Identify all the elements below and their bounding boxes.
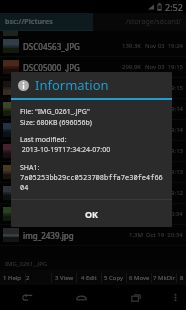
button[interactable]: img_2439.jpg [0,225,186,246]
staticText: DSC04563_.JPG [23,41,122,52]
button[interactable]: DSC05000_.JPG [0,57,186,78]
staticText: img_2437.jpg [23,209,129,220]
staticText: 2:52 [165,1,183,13]
button[interactable]: bsc://Pictures [0,13,93,30]
staticText: DSC05110_.JPG [23,104,122,115]
staticText: File: "IMG_0261_.JPG" [20,107,90,117]
staticText: Information [35,76,109,94]
button[interactable]: Recents [109,285,164,310]
staticText: 7 MkDir [153,274,176,282]
button[interactable]: DSC05420_.JPG [0,162,186,183]
button[interactable]: 7 MkDir [152,270,176,285]
staticText: 176.8K [122,168,142,176]
button[interactable]: 4 Edit [77,270,101,285]
staticText: Nov 03 19:24 [145,42,183,50]
staticText: DSC05011_.JPG [23,83,122,94]
staticText: 299.9K [122,63,142,71]
button[interactable]: Back [0,285,54,310]
button[interactable]: Home [54,285,109,310]
staticText: 139.3K [122,42,142,50]
staticText: 6 Move [129,274,150,282]
staticText: Last modified: [20,135,67,145]
staticText: 8 [180,274,184,282]
button[interactable]: 8 [177,270,186,285]
staticText: 04 [20,183,29,193]
button[interactable]: More options [164,285,186,310]
staticText: Nov 03 19:12 [145,189,183,197]
button[interactable]: OK [11,200,172,227]
staticText: Nov 03 19:14 [145,126,183,134]
staticText: 7a05253bb29cc0523708bffa7e30fe4f6658877 [20,173,166,183]
staticText: Nov 03 19:13 [145,147,183,155]
staticText: Oct 19 20:34 [146,210,183,218]
staticText: SHA1: [20,163,40,173]
staticText: 5 Copy [104,274,124,282]
staticText: 3 View [55,274,74,282]
button[interactable]: DSC05210_.JPG [0,120,186,141]
staticText: Nov 03 19:15 [145,63,183,71]
staticText: img_2439.jpg [23,230,129,241]
button[interactable]: DSC05011_.JPG [0,78,186,99]
staticText: bsc://Pictures [5,17,53,27]
staticText: IMG_0261_.JPG [5,260,48,268]
button[interactable]: /storage/sdcard/ [93,13,186,30]
staticText: OK [85,208,99,220]
staticText: 2 Rename [26,274,51,282]
staticText: 2013-10-19T17:34:24-07:00 [20,145,111,155]
staticText: Size: 680KB (696056b) [20,118,92,128]
button[interactable]: 2 Rename [26,270,51,285]
staticText: DSC05311_.JPG [23,146,122,157]
staticText: Nov 03 19:15 [145,84,183,92]
button[interactable]: DSC05530_.JPG [0,183,186,204]
staticText: /storage/sdcard/ [126,17,181,27]
staticText: Oct 19 20:34 [146,231,183,239]
staticText: Nov 03 19:13 [145,168,183,176]
staticText: 4 Edit [81,274,97,282]
button[interactable]: 3 View [52,270,76,285]
button[interactable]: DSC05110_.JPG [0,99,186,120]
staticText: Nov 03 19:14 [145,105,183,113]
staticText: DSC05000_.JPG [23,62,122,73]
button[interactable]: 6 Move [127,270,151,285]
staticText: DSC05530_.JPG [23,188,122,199]
button[interactable]: DSC04563_.JPG [0,36,186,57]
button[interactable]: 1 Help [0,270,25,285]
button[interactable]: img_2437.jpg [0,204,186,225]
staticText: DSC05210_.JPG [23,125,122,136]
staticText: 1 Help [3,274,22,282]
button[interactable]: DSC05311_.JPG [0,141,186,162]
button[interactable]: 5 Copy [102,270,126,285]
staticText: 1.3M [129,231,143,239]
staticText: DSC05420_.JPG [23,167,122,178]
